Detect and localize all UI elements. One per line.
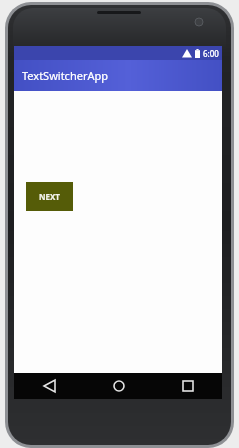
button[interactable]: Recent apps [153, 373, 222, 399]
staticText: TextSwitcherApp [22, 68, 108, 83]
staticText: 6:00 [203, 48, 219, 59]
button[interactable]: Home [84, 373, 153, 399]
button[interactable]: NEXT [26, 182, 73, 211]
staticText: NEXT [39, 191, 60, 202]
button[interactable]: Back [14, 373, 84, 399]
